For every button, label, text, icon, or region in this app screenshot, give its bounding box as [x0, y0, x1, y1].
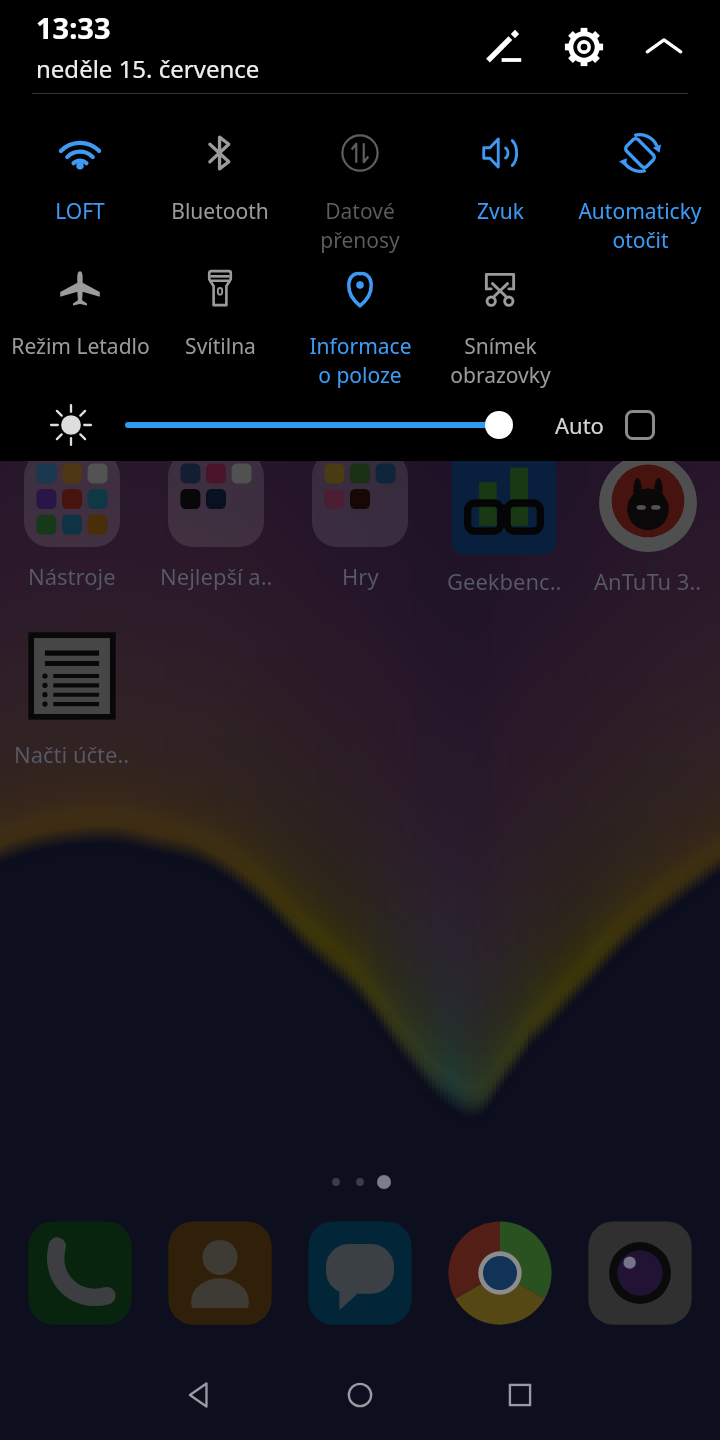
- staticText: otočit: [612, 226, 669, 255]
- button[interactable]: Snímek: [430, 266, 570, 390]
- staticText: Auto: [555, 410, 604, 440]
- button[interactable]: Home: [320, 1365, 400, 1425]
- button[interactable]: Messages: [290, 1214, 430, 1332]
- button[interactable]: Contacts: [150, 1214, 290, 1332]
- staticText: Režim Letadlo: [11, 332, 150, 361]
- staticText: neděle 15. července: [36, 52, 260, 85]
- staticText: přenosy: [320, 226, 400, 255]
- button[interactable]: Svítilna: [150, 266, 290, 361]
- button[interactable]: Phone: [10, 1214, 150, 1332]
- button[interactable]: Automaticky: [570, 131, 710, 255]
- button[interactable]: Režim Letadlo: [10, 266, 150, 361]
- staticText: Hry: [342, 561, 379, 591]
- button[interactable]: Načti účte..: [0, 624, 144, 769]
- button[interactable]: Nástroje: [0, 451, 144, 591]
- staticText: Informace: [309, 332, 412, 361]
- staticText: 13:33: [36, 8, 111, 47]
- staticText: Snímek: [464, 332, 537, 361]
- staticText: Načti účte..: [14, 739, 130, 769]
- button[interactable]: Zvuk: [430, 131, 570, 226]
- button[interactable]: Collapse: [636, 19, 692, 75]
- staticText: obrazovky: [450, 361, 551, 390]
- staticText: Bluetooth: [171, 197, 269, 226]
- button[interactable]: Bluetooth: [150, 131, 290, 226]
- button[interactable]: Edit: [476, 19, 532, 75]
- button[interactable]: Chrome: [430, 1214, 570, 1332]
- button[interactable]: Camera: [570, 1214, 710, 1332]
- button[interactable]: Hry: [288, 451, 432, 591]
- button[interactable]: LOFT: [10, 131, 150, 226]
- button[interactable]: Nejlepší a..: [144, 451, 288, 591]
- button[interactable]: Geekbenc..: [432, 451, 576, 596]
- staticText: AnTuTu 3..: [594, 566, 702, 596]
- staticText: Nejlepší a..: [160, 561, 273, 591]
- button[interactable]: Recents: [480, 1365, 560, 1425]
- button[interactable]: Datové: [290, 131, 430, 255]
- staticText: Geekbenc..: [447, 566, 562, 596]
- button[interactable]: Settings: [556, 19, 612, 75]
- button[interactable]: [118, 405, 518, 445]
- staticText: LOFT: [55, 197, 105, 226]
- staticText: Zvuk: [477, 197, 524, 226]
- staticText: Nástroje: [28, 561, 116, 591]
- staticText: Datové: [325, 197, 395, 226]
- staticText: o poloze: [318, 361, 402, 390]
- button[interactable]: Back: [160, 1365, 240, 1425]
- staticText: Automaticky: [578, 197, 702, 226]
- button[interactable]: Informace: [290, 266, 430, 390]
- button[interactable]: AnTuTu 3..: [576, 451, 720, 596]
- button[interactable]: Auto brightness: [618, 403, 662, 447]
- staticText: Svítilna: [185, 332, 256, 361]
